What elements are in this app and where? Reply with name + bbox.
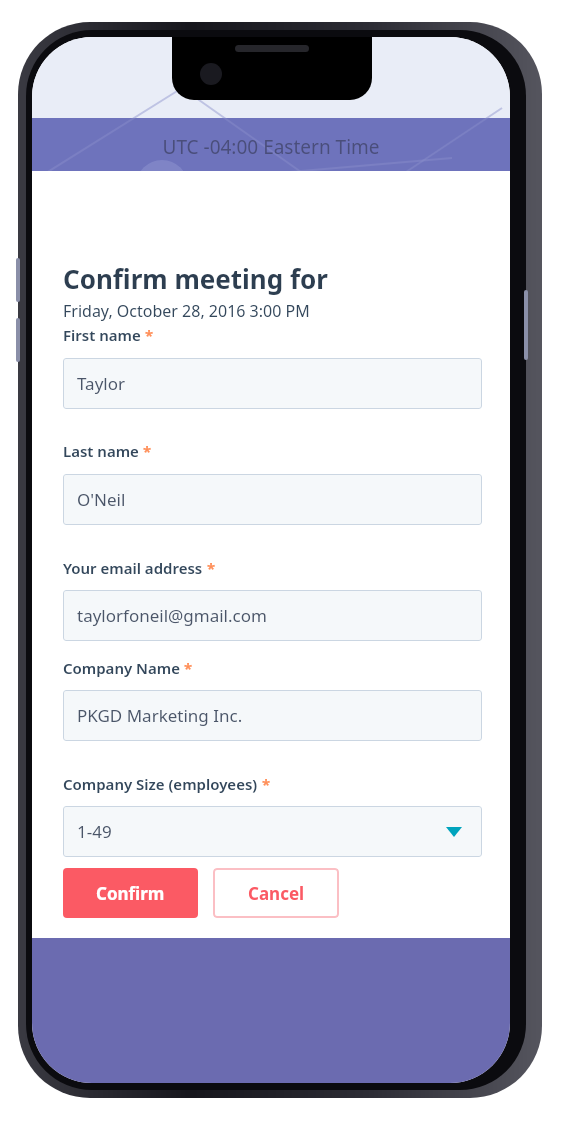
staticText: First name	[63, 325, 141, 345]
button[interactable]: Confirm	[63, 868, 198, 918]
staticText: Company Name	[63, 658, 180, 678]
staticText: Confirm meeting for	[63, 261, 328, 296]
staticText: Company Size (employees)	[63, 774, 258, 794]
staticText: Cancel	[248, 882, 305, 905]
staticText: O'Neil	[77, 488, 126, 511]
button[interactable]: O'Neil	[63, 474, 482, 525]
staticText: 1-49	[77, 820, 112, 843]
staticText: Friday, October 28, 2016 3:00 PM	[63, 300, 310, 322]
staticText: Taylor	[77, 372, 125, 395]
staticText: Confirm	[96, 882, 165, 905]
staticText: PKGD Marketing Inc.	[77, 704, 243, 727]
staticText: UTC -04:00 Eastern Time	[162, 134, 380, 160]
other: Volume down	[16, 318, 20, 362]
staticText: *	[180, 658, 193, 678]
other: Volume up	[16, 258, 20, 302]
staticText: *	[203, 558, 216, 578]
button[interactable]: PKGD Marketing Inc.	[63, 690, 482, 741]
staticText: Your email address	[63, 558, 203, 578]
staticText: *	[141, 325, 154, 345]
button[interactable]: taylorfoneil@gmail.com	[63, 590, 482, 641]
other: Power	[524, 290, 528, 360]
staticText: *	[139, 441, 152, 461]
staticText: *	[258, 774, 271, 794]
staticText: Last name	[63, 441, 139, 461]
button[interactable]: Cancel	[213, 868, 339, 918]
button[interactable]: 1-49	[63, 806, 482, 857]
staticText: taylorfoneil@gmail.com	[77, 604, 267, 627]
button[interactable]: Taylor	[63, 358, 482, 409]
